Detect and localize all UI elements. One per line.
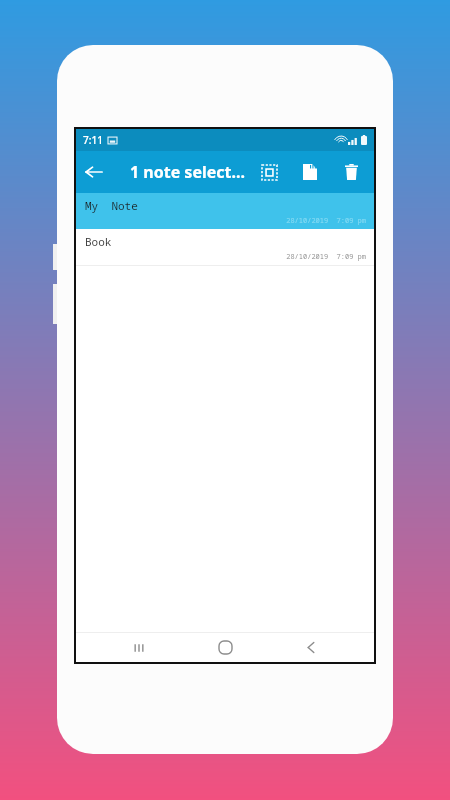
button[interactable]: Back [288, 633, 334, 662]
button[interactable]: Delete [334, 155, 368, 189]
button[interactable]: Home [202, 633, 248, 662]
button[interactable]: My Note [76, 193, 374, 229]
button[interactable]: Select all [252, 155, 286, 189]
staticText: My Note [85, 198, 138, 213]
button[interactable]: Back [76, 154, 112, 190]
staticText: 1 note select... [130, 161, 245, 183]
staticText: Book [85, 234, 112, 249]
staticText: 7:11 [83, 133, 103, 147]
button[interactable]: Save to SD card [293, 155, 327, 189]
staticText: 28/10/2019 7:09 pm [85, 252, 366, 262]
button[interactable]: Book [76, 229, 374, 265]
staticText: 28/10/2019 7:09 pm [85, 216, 366, 226]
button[interactable]: Recent apps [116, 633, 162, 662]
